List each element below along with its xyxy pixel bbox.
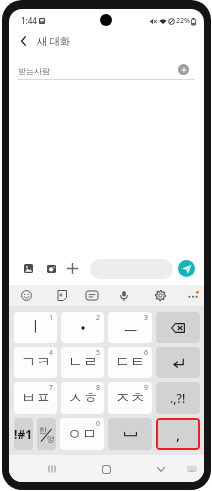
staticText: 5 <box>96 348 101 358</box>
staticText: ㅡ <box>123 318 138 337</box>
button[interactable]: ㅈㅊ <box>108 382 152 414</box>
button[interactable]: Send <box>178 260 195 277</box>
button[interactable]: Emoji <box>17 285 35 306</box>
button[interactable]: More options <box>184 285 202 306</box>
staticText: ㅅㅎ <box>68 389 98 408</box>
button[interactable]: Back <box>9 28 37 54</box>
staticText: 8 <box>96 383 101 393</box>
staticText: ㄱㅋ <box>21 353 51 372</box>
button[interactable]: ㅡ <box>108 312 152 343</box>
staticText: 0 <box>96 419 101 429</box>
staticText: 영 <box>47 434 55 444</box>
staticText: 새 대화 <box>37 34 71 48</box>
staticText: ㅣ <box>28 318 43 337</box>
staticText: 6 <box>144 348 149 358</box>
button[interactable]: Change keyboard <box>183 460 201 478</box>
button[interactable]: Settings <box>151 285 169 306</box>
staticText: ㅂㅍ <box>21 389 51 408</box>
button[interactable]: Enter <box>156 347 200 378</box>
button[interactable]: ㅇㅁ <box>60 418 104 450</box>
button[interactable]: !#1 <box>14 418 33 450</box>
staticText: 2 <box>96 313 101 323</box>
button[interactable]: 한 <box>37 418 56 450</box>
staticText: 3 <box>144 313 149 323</box>
staticText: 받는사람 <box>18 66 50 76</box>
button[interactable]: More attachments <box>64 260 81 277</box>
button[interactable] <box>90 259 173 279</box>
button[interactable]: ㅂㅍ <box>14 382 57 414</box>
button[interactable]: .,?! <box>156 382 200 414</box>
button[interactable]: Home <box>97 460 115 478</box>
button[interactable]: Gallery <box>20 260 37 277</box>
staticText: ㅇㅁ <box>67 425 97 444</box>
staticText: 9 <box>144 383 149 393</box>
button[interactable]: ㄱㅋ <box>14 347 57 378</box>
button[interactable]: ㅣ <box>14 312 57 343</box>
button[interactable]: Stickers <box>52 285 70 306</box>
staticText: ㄴㄹ <box>68 353 98 372</box>
button[interactable]: ㅅㅎ <box>61 382 104 414</box>
button[interactable]: Backspace <box>156 312 200 343</box>
button[interactable]: Hide keyboard <box>152 460 170 478</box>
staticText: !#1 <box>14 426 33 442</box>
staticText: 4 <box>49 348 54 358</box>
staticText: 1:44 <box>21 15 37 26</box>
button[interactable]: GIF <box>83 285 101 306</box>
staticText: ㅈㅊ <box>115 389 145 408</box>
staticText: 한 <box>39 425 47 435</box>
staticText: 22% <box>176 16 190 26</box>
button[interactable]: , <box>156 418 200 450</box>
button[interactable]: 2 <box>61 312 104 343</box>
staticText: ㄷㅌ <box>115 353 145 372</box>
button[interactable]: ㄴㄹ <box>61 347 104 378</box>
staticText: .,?! <box>170 390 186 406</box>
staticText: 1 <box>49 313 54 323</box>
button[interactable]: Recent apps <box>43 460 61 478</box>
button[interactable]: ㄷㅌ <box>108 347 152 378</box>
button[interactable]: Camera <box>43 260 60 277</box>
staticText: , <box>176 424 181 444</box>
staticText: 7 <box>49 383 54 393</box>
button[interactable]: Voice input <box>115 285 133 306</box>
button[interactable]: Add recipient <box>178 64 189 75</box>
button[interactable]: Space <box>108 418 152 450</box>
